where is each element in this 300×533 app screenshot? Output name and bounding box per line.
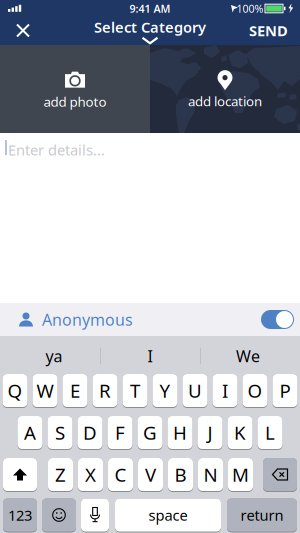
button[interactable]: X	[78, 458, 103, 492]
staticText: A	[24, 420, 36, 445]
staticText: Select Category	[94, 17, 206, 37]
button[interactable]: Q	[2, 374, 27, 408]
button[interactable]	[81, 498, 109, 532]
staticText: I	[222, 378, 228, 403]
staticText: F	[115, 420, 125, 445]
staticText: V	[145, 462, 156, 487]
button[interactable]	[3, 458, 37, 492]
button[interactable]: O	[242, 374, 267, 408]
button[interactable]	[6, 16, 40, 45]
staticText: W	[36, 378, 53, 403]
staticText: H	[173, 420, 187, 445]
staticText: P	[279, 378, 290, 403]
staticText: return	[240, 505, 283, 525]
button[interactable]: add photo	[0, 45, 150, 133]
button[interactable]: P	[272, 374, 297, 408]
staticText: 9:41 AM	[129, 1, 170, 16]
staticText: M	[232, 462, 249, 487]
button[interactable]	[261, 310, 294, 329]
button[interactable]: K	[227, 416, 252, 450]
staticText: We	[236, 345, 260, 367]
staticText: B	[174, 462, 186, 487]
staticText: SEND	[249, 21, 288, 40]
staticText: R	[99, 378, 111, 403]
button[interactable]: We	[203, 341, 293, 371]
button[interactable]: H	[167, 416, 192, 450]
button[interactable]: add location	[150, 45, 300, 133]
button[interactable]: Y	[152, 374, 177, 408]
button[interactable]: return	[227, 498, 297, 532]
button[interactable]: SEND	[249, 21, 288, 40]
staticText: U	[188, 378, 202, 403]
staticText: T	[130, 378, 140, 403]
staticText: N	[203, 462, 217, 487]
button[interactable]: L	[257, 416, 282, 450]
staticText: Y	[159, 378, 170, 403]
staticText: J	[207, 420, 212, 445]
button[interactable]: I	[212, 374, 237, 408]
staticText: add photo	[43, 93, 106, 110]
staticText: add location	[188, 92, 262, 110]
button[interactable]: R	[92, 374, 117, 408]
staticText: Anonymous	[42, 309, 133, 330]
staticText: ya	[45, 345, 62, 367]
staticText: G	[143, 420, 157, 445]
button[interactable]: ya	[9, 341, 99, 371]
button[interactable]: C	[108, 458, 133, 492]
button[interactable]: Enter details...	[0, 133, 300, 303]
button[interactable]	[42, 498, 76, 532]
button[interactable]: T	[122, 374, 147, 408]
button[interactable]	[142, 38, 157, 43]
button[interactable]: W	[32, 374, 57, 408]
staticText: E	[70, 378, 80, 403]
button[interactable]: space	[115, 498, 221, 532]
button[interactable]: E	[62, 374, 87, 408]
button[interactable]: G	[137, 416, 162, 450]
staticText: D	[83, 420, 97, 445]
staticText: I	[147, 345, 152, 367]
staticText: Z	[55, 462, 66, 487]
staticText: S	[55, 420, 65, 445]
button[interactable]: J	[197, 416, 222, 450]
staticText: L	[265, 420, 275, 445]
button[interactable]	[263, 458, 297, 492]
staticText: Q	[7, 378, 22, 403]
staticText: O	[247, 378, 262, 403]
staticText: C	[114, 462, 126, 487]
staticText: X	[85, 462, 96, 487]
button[interactable]: S	[47, 416, 72, 450]
button[interactable]: N	[198, 458, 223, 492]
button[interactable]: Z	[48, 458, 73, 492]
button[interactable]: U	[182, 374, 207, 408]
staticText: 100%	[236, 1, 263, 16]
staticText: K	[234, 420, 246, 445]
button[interactable]: I	[105, 341, 195, 371]
button[interactable]: B	[168, 458, 193, 492]
staticText: Enter details...	[8, 140, 105, 159]
button[interactable]: 123	[3, 498, 37, 532]
button[interactable]: D	[77, 416, 102, 450]
staticText: 123	[8, 505, 32, 525]
button[interactable]: M	[228, 458, 253, 492]
staticText: space	[148, 505, 187, 525]
button[interactable]: A	[17, 416, 42, 450]
button[interactable]: V	[138, 458, 163, 492]
button[interactable]: F	[107, 416, 132, 450]
